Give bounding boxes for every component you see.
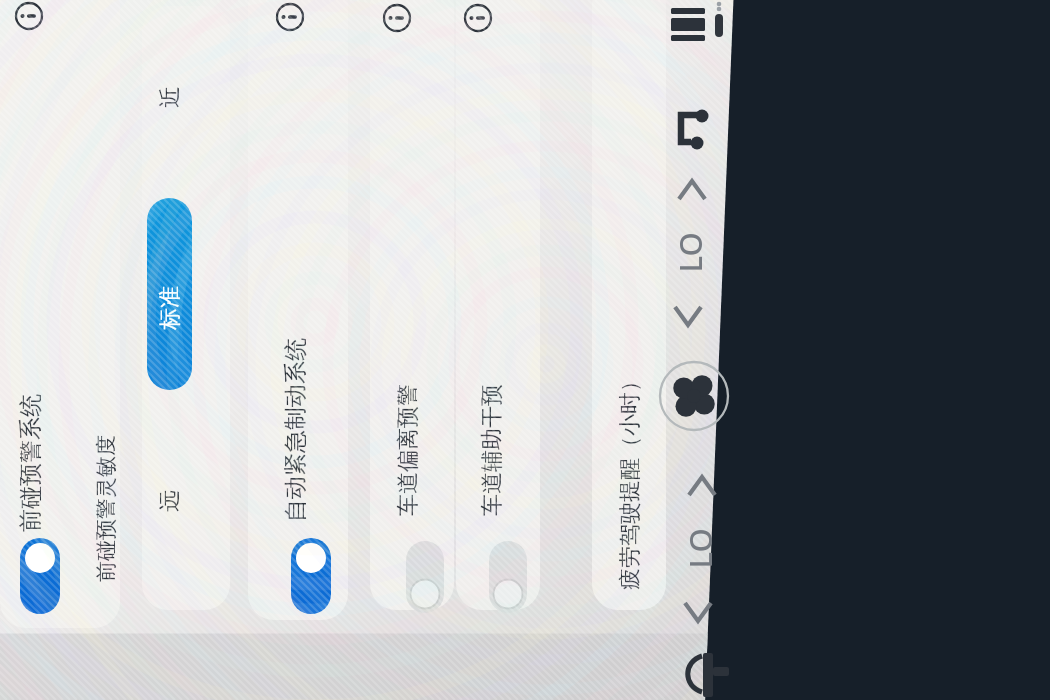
button[interactable]: Driver assistance settings screen (0, 0, 1050, 700)
